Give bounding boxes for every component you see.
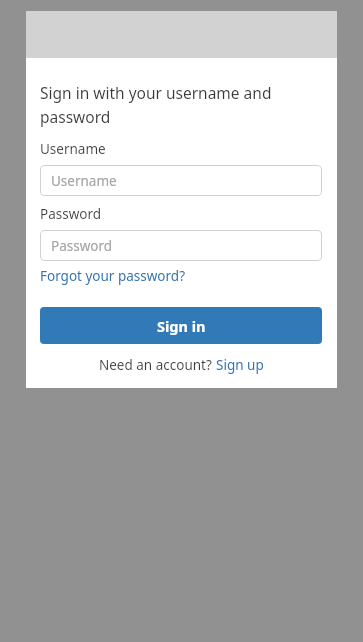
staticText: Forgot your password? [40,267,186,285]
button[interactable]: Sign in [40,307,322,344]
staticText: Password [51,237,113,255]
staticText: Sign in [157,316,206,336]
staticText: Sign up [216,356,264,374]
staticText: Sign in with your username and password [40,82,322,127]
staticText: Need an account? [99,356,216,374]
button[interactable]: Username [40,165,322,196]
staticText: Password [40,205,102,223]
button[interactable]: Sign up [216,356,264,374]
staticText: Username [40,140,106,158]
button[interactable]: Password [40,230,322,261]
button[interactable]: Forgot your password? [40,267,186,285]
staticText: Username [51,172,117,190]
